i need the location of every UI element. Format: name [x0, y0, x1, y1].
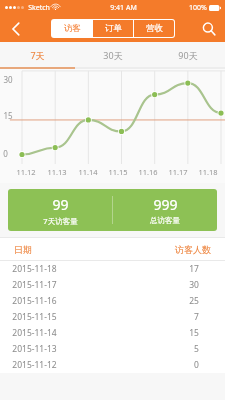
button[interactable]: Search [193, 15, 225, 42]
staticText: 营收 [146, 23, 163, 34]
button[interactable]: 营收 [134, 20, 174, 37]
staticText: 2015-11-14 [12, 327, 57, 339]
button[interactable]: 订单 [93, 20, 133, 37]
staticText: 2015-11-16 [12, 295, 57, 307]
staticText: 15 [189, 327, 199, 339]
staticText: 总访客量 [150, 216, 180, 225]
staticText: 访客 [64, 23, 81, 34]
staticText: 日期 [14, 244, 32, 255]
staticText: 7天访客量 [43, 216, 78, 226]
staticText: 100% [189, 3, 207, 13]
staticText: 11.16 [138, 167, 158, 177]
button[interactable]: 999 [113, 189, 217, 231]
staticText: 25 [189, 295, 199, 307]
staticText: 7 [194, 311, 199, 323]
staticText: 访客人数 [175, 244, 211, 255]
button[interactable]: 访客 [52, 20, 92, 37]
staticText: 2015-11-18 [12, 263, 57, 275]
button[interactable]: 2015-11-18 [0, 261, 225, 277]
staticText: 30 [3, 74, 13, 85]
staticText: 5 [194, 343, 199, 355]
staticText: Sketch [28, 3, 50, 13]
button[interactable]: 2015-11-17 [0, 277, 225, 293]
button[interactable]: 2015-11-15 [0, 309, 225, 325]
staticText: 30天 [103, 49, 123, 61]
staticText: 11.12 [16, 167, 36, 177]
staticText: 2015-11-13 [12, 343, 57, 355]
staticText: 订单 [105, 23, 122, 34]
button[interactable]: 2015-11-14 [0, 325, 225, 341]
staticText: 2015-11-17 [12, 279, 57, 291]
button[interactable]: 99 [8, 189, 112, 231]
staticText: 90天 [178, 49, 198, 61]
staticText: 15 [3, 110, 13, 121]
staticText: 7天 [30, 49, 45, 61]
staticText: 11.18 [198, 167, 218, 177]
staticText: 2015-11-15 [12, 311, 57, 323]
staticText: 11.13 [47, 167, 67, 177]
staticText: 30 [189, 279, 199, 291]
staticText: 17 [189, 263, 199, 275]
button[interactable]: 30天 [75, 42, 150, 67]
button[interactable]: 2015-11-16 [0, 293, 225, 309]
button[interactable]: 2015-11-13 [0, 341, 225, 357]
staticText: 0 [3, 148, 8, 159]
button[interactable]: 90天 [150, 42, 225, 67]
staticText: 0 [194, 359, 199, 371]
staticText: 11.14 [78, 167, 98, 177]
staticText: 999 [153, 195, 178, 214]
staticText: 99 [52, 195, 69, 214]
staticText: 9:41 AM [110, 3, 137, 13]
staticText: 11.15 [108, 167, 128, 177]
staticText: 2015-11-12 [12, 359, 57, 371]
staticText: 11.17 [168, 167, 188, 177]
button[interactable]: 2015-11-12 [0, 357, 225, 373]
button[interactable]: 7天 [0, 42, 75, 67]
button[interactable]: Back [0, 15, 32, 42]
